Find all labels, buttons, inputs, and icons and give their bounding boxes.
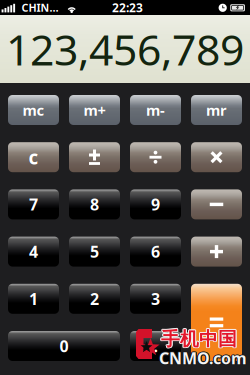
button[interactable]: 6 (130, 237, 181, 267)
staticText: m+ (83, 100, 105, 120)
button[interactable]: 5 (69, 237, 120, 267)
button[interactable]: 1 (8, 284, 59, 314)
staticText: 8 (90, 194, 99, 215)
staticText: 手机中国 (160, 327, 236, 350)
staticText: 4 (29, 241, 38, 262)
staticText: 6 (151, 241, 160, 262)
staticText: . (153, 335, 157, 357)
staticText: 5 (90, 241, 99, 262)
button[interactable]: mc (8, 95, 59, 125)
staticText: CHIN… (21, 0, 58, 15)
button[interactable]: 7 (8, 189, 59, 219)
staticText: 手机中国 (160, 327, 236, 350)
button[interactable] (130, 142, 181, 172)
staticText: 手机中国 (161, 327, 237, 350)
staticText: CNMO.com (160, 347, 248, 368)
staticText: 7 (29, 194, 38, 215)
staticText: mc (22, 100, 44, 120)
staticText: 123,456,789 (6, 21, 244, 77)
staticText: 22:23 (112, 0, 143, 15)
button[interactable] (191, 189, 242, 219)
staticText: 手机中国 (161, 328, 237, 351)
staticText: CNMO.com (158, 348, 246, 369)
button[interactable]: 0 (8, 331, 120, 361)
staticText: 1 (29, 288, 38, 309)
staticText: CNMO.com (158, 347, 246, 369)
button[interactable]: mr (191, 95, 242, 125)
staticText: mr (206, 100, 227, 120)
staticText: 3 (151, 288, 160, 309)
button[interactable] (191, 237, 242, 267)
staticText: 手机中国 (160, 328, 236, 351)
button[interactable] (69, 142, 120, 172)
staticText: 9 (151, 194, 160, 215)
staticText: CNMO.com (159, 347, 247, 369)
button[interactable]: m+ (69, 95, 120, 125)
button[interactable]: 8 (69, 189, 120, 219)
staticText: 手机中国 (161, 327, 237, 349)
staticText: CNMO.com (160, 347, 248, 369)
button[interactable]: 2 (69, 284, 120, 314)
staticText: 手机中国 (162, 328, 238, 351)
button[interactable] (191, 142, 242, 172)
button[interactable]: 4 (8, 237, 59, 267)
staticText: CNMO.com (160, 348, 248, 369)
button[interactable]: . (130, 331, 181, 361)
staticText: CNMO.com (158, 347, 246, 368)
staticText: 手机中国 (162, 327, 238, 350)
button[interactable] (191, 284, 242, 361)
staticText: CNMO.com (159, 348, 247, 370)
button[interactable]: 9 (130, 189, 181, 219)
staticText: m- (146, 100, 165, 120)
button[interactable]: c (8, 142, 59, 172)
staticText: 手机中国 (162, 327, 238, 350)
staticText: 0 (59, 335, 68, 357)
staticText: c (28, 145, 38, 170)
staticText: 2 (90, 288, 99, 309)
button[interactable]: m- (130, 95, 181, 125)
staticText: CNMO.com (159, 347, 247, 368)
button[interactable]: 3 (130, 284, 181, 314)
